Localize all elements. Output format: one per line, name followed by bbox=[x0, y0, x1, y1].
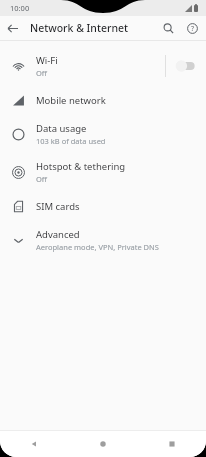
button[interactable]: Mobile network bbox=[0, 85, 206, 115]
button[interactable]: Search bbox=[156, 16, 180, 40]
button[interactable]: Wi-Fi toggle bbox=[166, 51, 206, 81]
button[interactable]: Home bbox=[68, 431, 137, 457]
button[interactable]: Hotspot & tethering bbox=[0, 153, 206, 191]
staticText: Off bbox=[36, 68, 48, 78]
staticText: Off bbox=[36, 174, 48, 184]
button[interactable]: Data usage bbox=[0, 115, 206, 153]
staticText: Network & Internet bbox=[30, 21, 129, 35]
staticText: Data usage bbox=[36, 122, 87, 135]
button[interactable]: Help bbox=[180, 16, 204, 40]
button[interactable]: Back bbox=[0, 16, 24, 40]
button[interactable]: Recent apps bbox=[137, 431, 206, 457]
staticText: 10:00 bbox=[10, 3, 30, 13]
staticText: Aeroplane mode, VPN, Private DNS bbox=[36, 242, 159, 252]
button[interactable]: SIM cards bbox=[0, 191, 206, 221]
button[interactable]: Wi-Fi bbox=[0, 47, 206, 85]
staticText: Mobile network bbox=[36, 94, 106, 107]
staticText: Advanced bbox=[36, 228, 80, 241]
staticText: Hotspot & tethering bbox=[36, 160, 126, 173]
staticText: ? bbox=[191, 24, 195, 34]
button[interactable]: Back bbox=[0, 431, 68, 457]
staticText: SIM cards bbox=[36, 200, 80, 213]
staticText: Wi-Fi bbox=[36, 54, 58, 67]
staticText: 103 kB of data used bbox=[36, 136, 106, 146]
button[interactable]: Advanced bbox=[0, 221, 206, 259]
